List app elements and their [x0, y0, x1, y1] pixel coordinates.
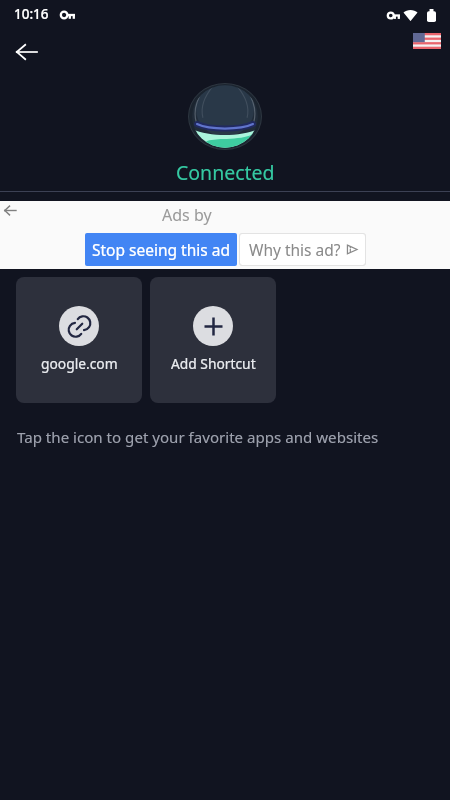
staticText: Tap the icon to get your favorite apps a…: [17, 427, 379, 448]
staticText: Stop seeing this ad: [92, 239, 230, 260]
staticText: 10:16: [14, 5, 49, 23]
button[interactable]: Back: [0, 195, 25, 225]
staticText: Ads by: [162, 204, 212, 226]
staticText: Connected: [176, 159, 275, 186]
button[interactable]: Back: [5, 31, 47, 73]
staticText: google.com: [41, 354, 118, 373]
staticText: Why this ad?: [249, 239, 341, 260]
button[interactable]: google.com: [16, 277, 142, 403]
button[interactable]: Add Shortcut: [150, 277, 276, 403]
button[interactable]: Selected region United States: [410, 28, 444, 54]
button[interactable]: Why this ad?: [240, 234, 365, 265]
button[interactable]: Stop seeing this ad: [85, 233, 237, 266]
staticText: Add Shortcut: [171, 354, 256, 373]
